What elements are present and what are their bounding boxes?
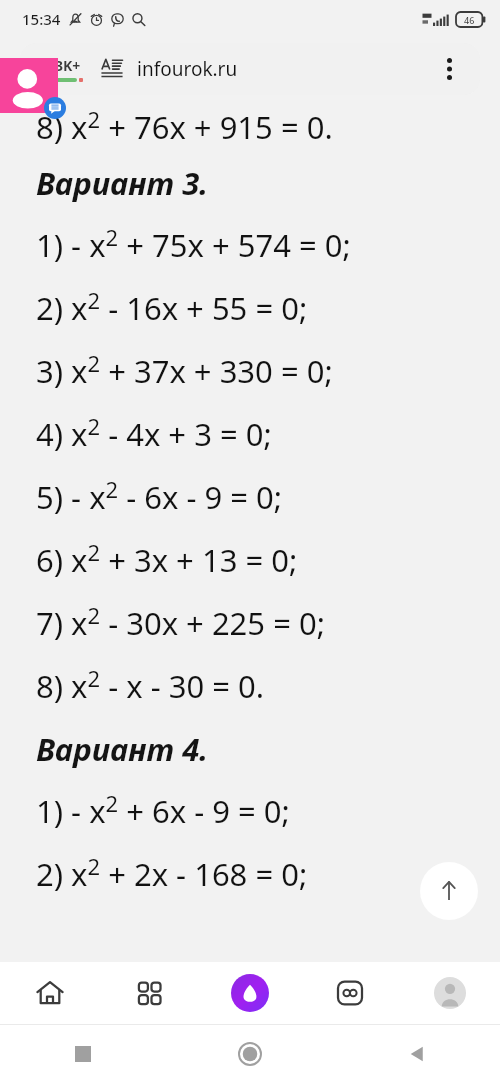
staticText: 1) - x2 + 75x + 574 = 0; xyxy=(36,222,351,266)
button[interactable]: Dashboard xyxy=(100,962,200,1024)
button[interactable]: Home xyxy=(166,1025,333,1083)
button[interactable]: 3K+ xyxy=(20,43,480,95)
staticText: infourok.ru xyxy=(137,56,238,82)
button[interactable]: Back xyxy=(333,1025,500,1083)
button[interactable]: More options xyxy=(434,54,464,84)
staticText: 3) x2 + 37x + 330 = 0; xyxy=(36,348,333,392)
staticText: 2) x2 - 16x + 55 = 0; xyxy=(36,285,308,329)
staticText: 15:34 xyxy=(22,9,61,29)
staticText: 8) x2 - x - 30 = 0. xyxy=(36,663,265,707)
staticText: 8) x2 + 76x + 915 = 0. xyxy=(36,104,333,148)
staticText: 3K+ xyxy=(55,56,81,75)
staticText: Вариант 4. xyxy=(36,728,209,770)
staticText: Вариант 3. xyxy=(36,162,209,204)
staticText: 4) x2 - 4x + 3 = 0; xyxy=(36,411,272,455)
button[interactable]: Recents xyxy=(0,1025,166,1083)
staticText: 2) x2 + 2x - 168 = 0; xyxy=(36,851,308,895)
staticText: 7) x2 - 30x + 225 = 0; xyxy=(36,600,325,644)
button[interactable]: Profile xyxy=(400,962,500,1024)
staticText: 6) x2 + 3x + 13 = 0; xyxy=(36,537,298,581)
staticText: 46 xyxy=(464,14,475,26)
button[interactable]: Alice assistant xyxy=(200,962,300,1024)
staticText: 5) - x2 - 6x - 9 = 0; xyxy=(36,474,283,518)
button[interactable]: Tabs xyxy=(300,962,400,1024)
staticText: 1) - x2 + 6x - 9 = 0; xyxy=(36,788,290,832)
button[interactable]: Scroll to top xyxy=(420,862,478,920)
button[interactable]: Home xyxy=(0,962,100,1024)
